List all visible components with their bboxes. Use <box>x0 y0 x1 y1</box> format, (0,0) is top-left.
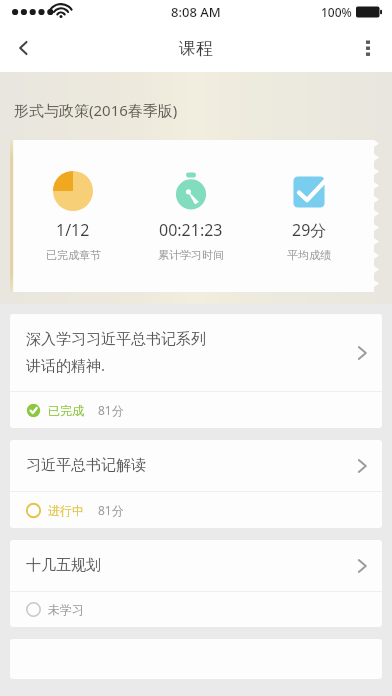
staticText: 课程 <box>179 38 213 59</box>
staticText: 形式与政策(2016春季版) <box>14 100 178 120</box>
staticText: 已完成章节 <box>46 248 101 262</box>
button[interactable]: Back <box>0 24 48 72</box>
staticText: 81分 <box>98 402 124 418</box>
staticText: 讲话的精神. <box>26 355 106 375</box>
staticText: 平均成绩 <box>287 248 331 262</box>
button[interactable]: 深入学习习近平总书记系列 <box>10 314 382 428</box>
staticText: 进行中 <box>48 503 84 518</box>
staticText: 习近平总书记解读 <box>26 456 146 475</box>
button[interactable]: More options <box>344 24 392 72</box>
staticText: 十几五规划 <box>26 556 101 575</box>
button[interactable]: 十几五规划 <box>10 540 382 627</box>
staticText: 未学习 <box>48 602 84 617</box>
staticText: 累计学习时间 <box>158 248 224 262</box>
staticText: 29分 <box>292 219 327 241</box>
staticText: 81分 <box>98 502 124 518</box>
staticText: 100% <box>321 4 352 20</box>
staticText: 00:21:23 <box>159 219 223 241</box>
staticText: 已完成 <box>48 403 84 418</box>
staticText: 8:08 AM <box>171 3 221 21</box>
staticText: 深入学习习近平总书记系列 <box>26 330 206 349</box>
button[interactable]: 1/12 <box>10 140 392 292</box>
staticText: 1/12 <box>56 219 90 241</box>
button[interactable]: 习近平总书记解读 <box>10 440 382 528</box>
